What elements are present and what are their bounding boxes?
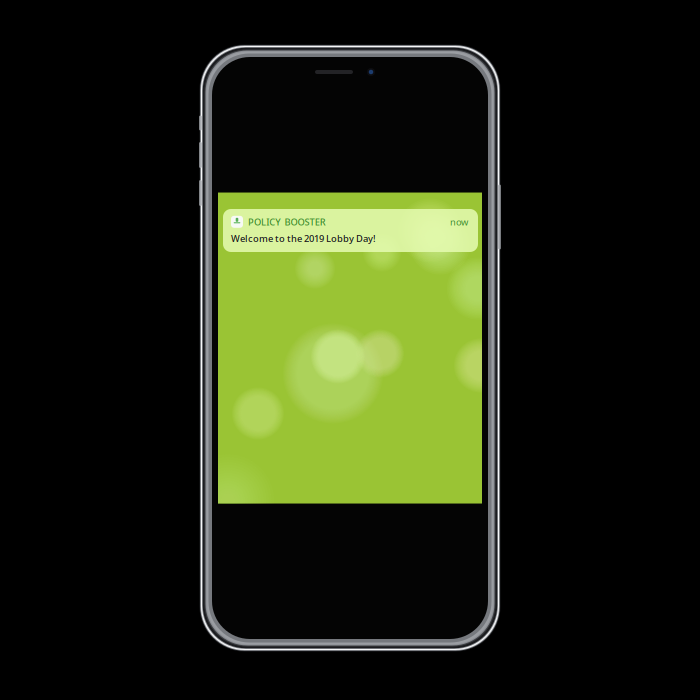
staticText: now bbox=[450, 216, 468, 228]
staticText: Welcome to the 2019 Lobby Day! bbox=[231, 232, 376, 245]
button[interactable]: POLICY BOOSTER bbox=[223, 209, 478, 252]
staticText: POLICY BOOSTER bbox=[248, 216, 326, 228]
